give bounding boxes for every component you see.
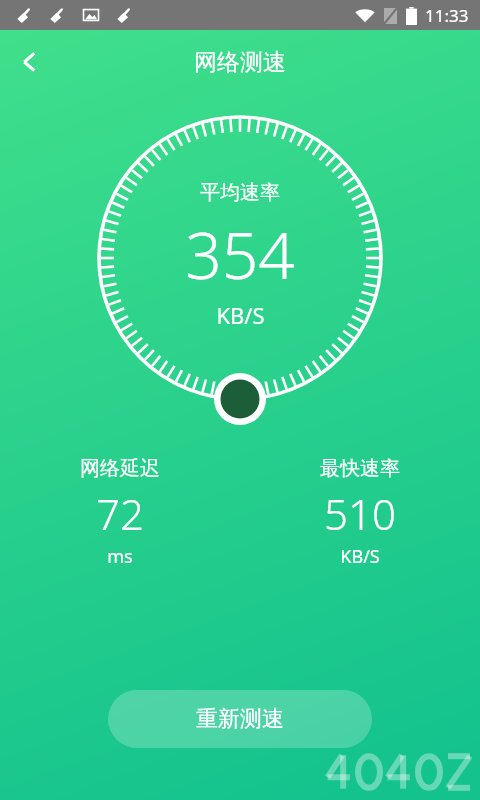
staticText: 网络测速 xyxy=(194,48,286,77)
staticText: 最快速率 xyxy=(320,456,400,481)
staticText: 平均速率 xyxy=(200,180,280,205)
staticText: KB/S xyxy=(340,544,380,569)
staticText: ms xyxy=(107,544,133,569)
staticText: 重新测速 xyxy=(196,705,284,733)
staticText: 510 xyxy=(324,485,396,542)
button[interactable]: 重新测速 xyxy=(108,690,372,748)
staticText: 11:33 xyxy=(425,4,469,27)
staticText: KB/S xyxy=(216,300,265,330)
staticText: 354 xyxy=(185,211,295,298)
button[interactable]: Back xyxy=(4,36,56,88)
staticText: 网络延迟 xyxy=(80,456,160,481)
staticText: 72 xyxy=(96,485,144,542)
